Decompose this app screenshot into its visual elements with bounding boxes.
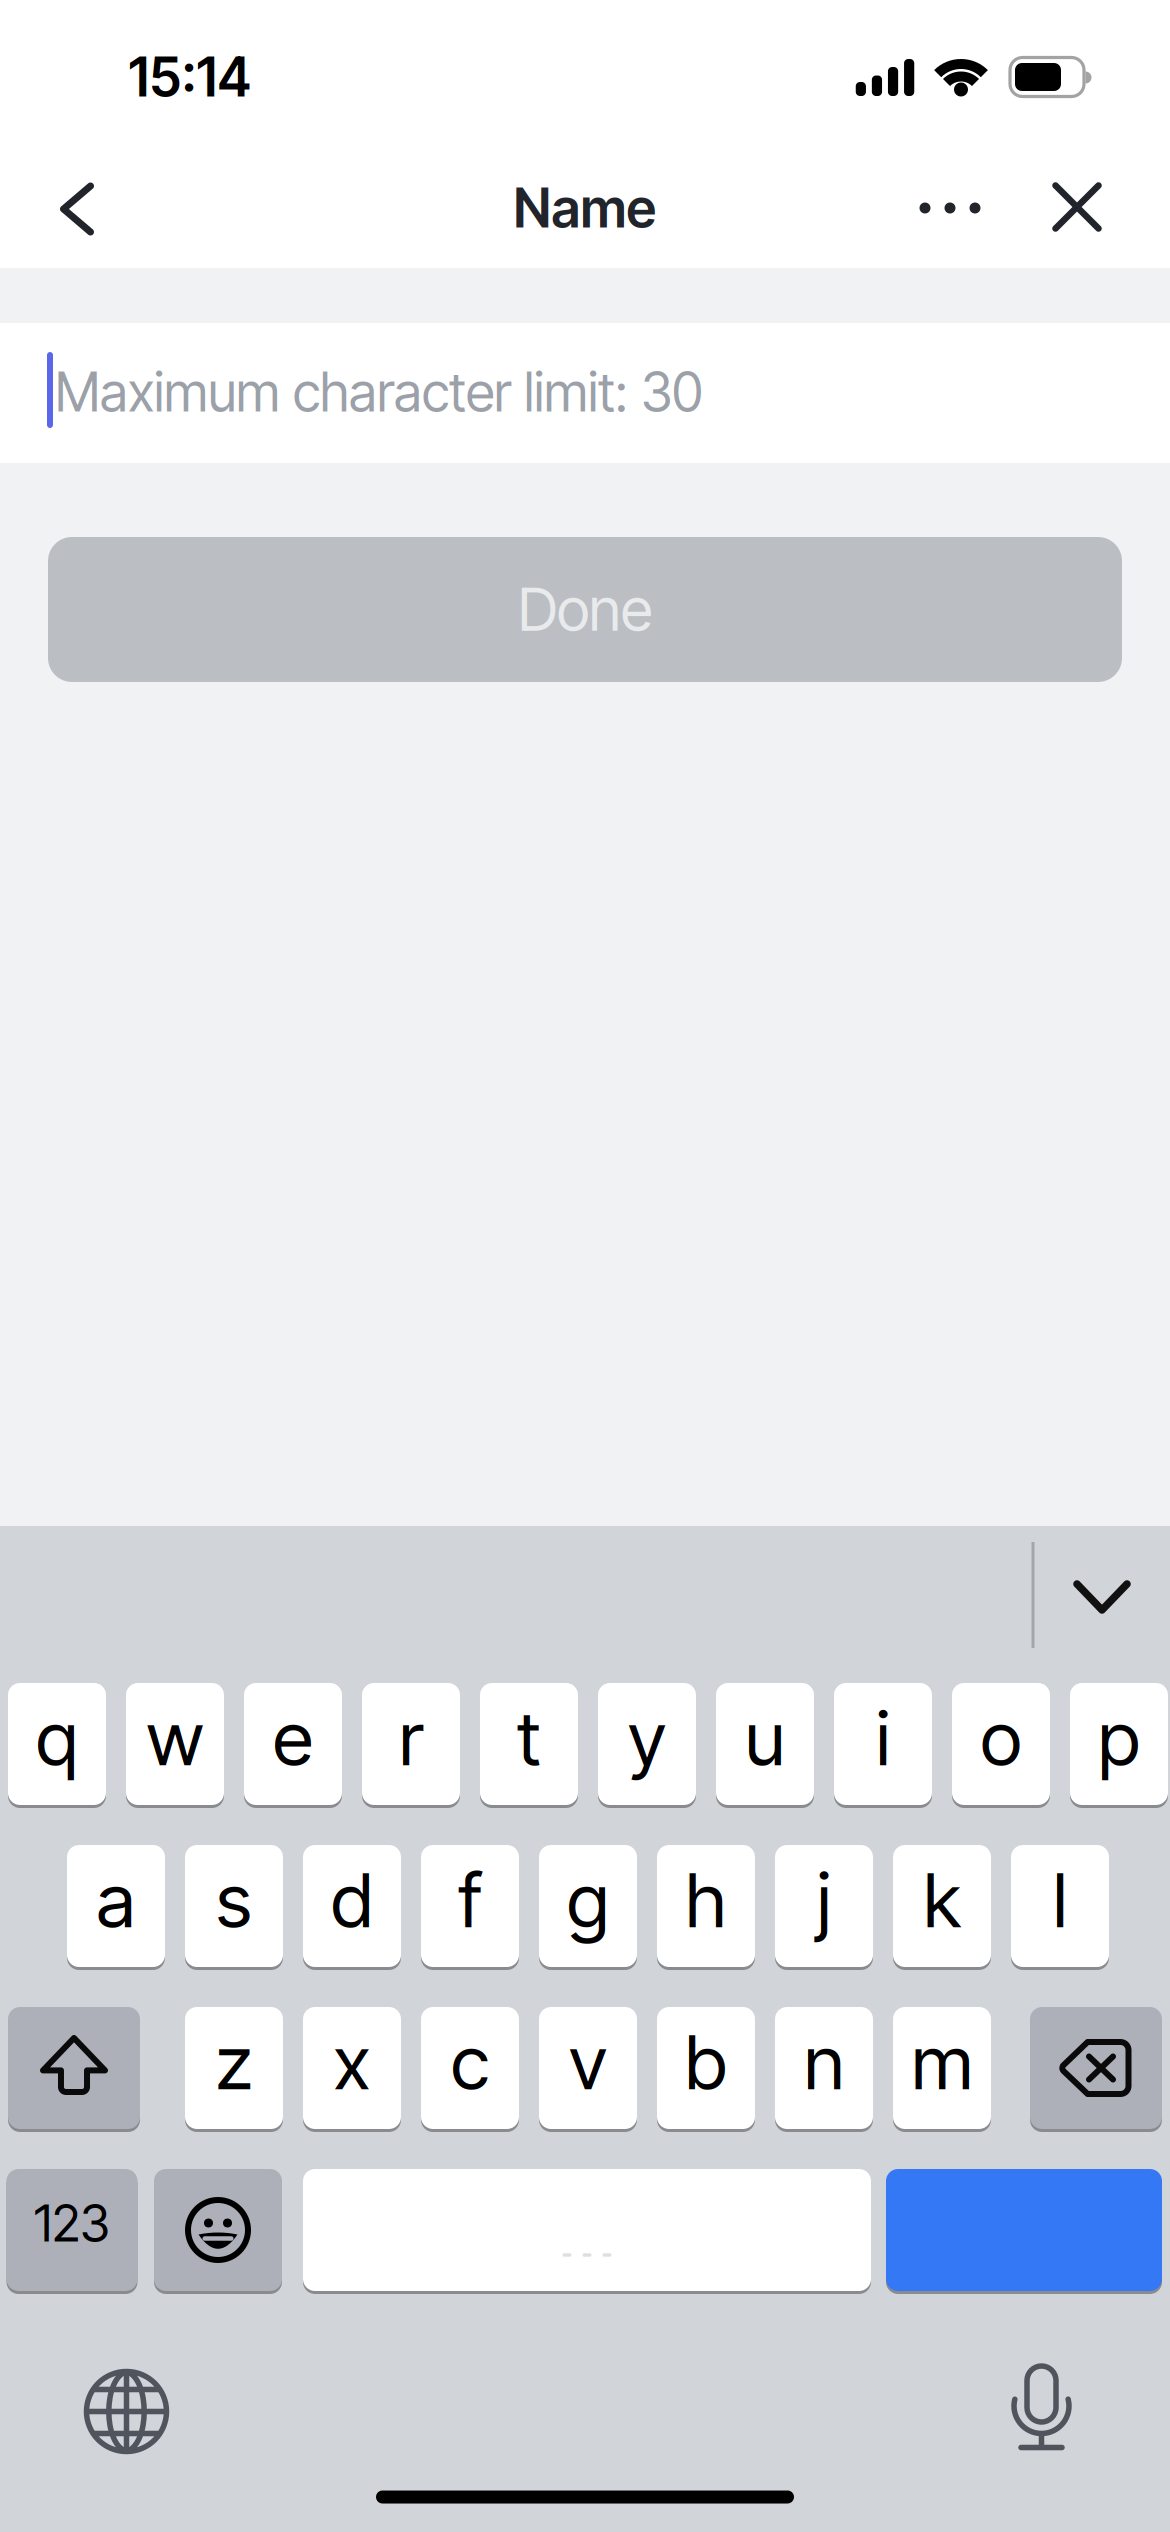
button[interactable]: n: [775, 2007, 873, 2129]
staticText: l: [1053, 1856, 1067, 1944]
staticText: r: [399, 1694, 423, 1782]
button[interactable]: o: [952, 1683, 1050, 1805]
staticText: j: [817, 1856, 831, 1944]
staticText: s: [216, 1856, 252, 1944]
button[interactable]: Next keyboard: [71, 2356, 181, 2466]
button[interactable]: w: [126, 1683, 224, 1805]
button[interactable]: f: [421, 1845, 519, 1967]
button[interactable]: Return: [886, 2169, 1162, 2291]
button[interactable]: d: [303, 1845, 401, 1967]
staticText: Done: [518, 575, 652, 644]
button[interactable]: j: [775, 1845, 873, 1967]
staticText: Name: [513, 176, 656, 239]
staticText: t: [517, 1694, 541, 1782]
staticText: f: [458, 1856, 481, 1944]
staticText: k: [923, 1856, 960, 1944]
button[interactable]: l: [1011, 1845, 1109, 1967]
button[interactable]: z: [185, 2007, 283, 2129]
button[interactable]: h: [657, 1845, 755, 1967]
staticText: u: [745, 1694, 785, 1782]
button[interactable]: Close: [1032, 162, 1122, 252]
button[interactable]: p: [1070, 1683, 1168, 1805]
staticText: d: [331, 1856, 373, 1944]
button[interactable]: u: [716, 1683, 814, 1805]
staticText: o: [980, 1694, 1021, 1782]
button[interactable]: k: [893, 1845, 991, 1967]
staticText: e: [273, 1694, 313, 1782]
staticText: c: [451, 2018, 489, 2106]
staticText: q: [36, 1694, 78, 1782]
staticText: p: [1098, 1694, 1140, 1782]
staticText: m: [911, 2018, 972, 2106]
button[interactable]: s: [185, 1845, 283, 1967]
button[interactable]: i: [834, 1683, 932, 1805]
staticText: v: [569, 2018, 607, 2106]
button[interactable]: q: [8, 1683, 106, 1805]
button[interactable]: Back: [32, 164, 122, 254]
staticText: 123: [34, 2193, 110, 2253]
button[interactable]: Dictation: [986, 2353, 1096, 2463]
staticText: b: [685, 2018, 727, 2106]
staticText: z: [215, 2018, 252, 2106]
staticText: g: [567, 1856, 609, 1944]
button[interactable]: Shift: [8, 2007, 140, 2129]
button[interactable]: Delete: [1030, 2007, 1162, 2129]
button[interactable]: t: [480, 1683, 578, 1805]
button[interactable]: Emoji: [154, 2169, 282, 2291]
button[interactable]: a: [67, 1845, 165, 1967]
button[interactable]: c: [421, 2007, 519, 2129]
button[interactable]: r: [362, 1683, 460, 1805]
button[interactable]: Dismiss keyboard: [1052, 1552, 1152, 1642]
staticText: Maximum character limit: 30: [55, 360, 703, 423]
staticText: n: [804, 2018, 844, 2106]
button[interactable]: More: [905, 163, 995, 253]
button[interactable]: v: [539, 2007, 637, 2129]
button[interactable]: Space: [303, 2169, 871, 2291]
staticText: y: [628, 1694, 666, 1782]
staticText: 15:14: [128, 45, 251, 108]
staticText: w: [146, 1694, 203, 1782]
staticText: h: [685, 1856, 726, 1944]
staticText: x: [333, 2018, 370, 2106]
button[interactable]: x: [303, 2007, 401, 2129]
button[interactable]: y: [598, 1683, 696, 1805]
button[interactable]: Numbers: [6, 2169, 137, 2291]
staticText: i: [876, 1694, 890, 1782]
button[interactable]: Done: [48, 537, 1122, 682]
button[interactable]: m: [893, 2007, 991, 2129]
button[interactable]: b: [657, 2007, 755, 2129]
staticText: a: [96, 1856, 135, 1944]
button[interactable]: e: [244, 1683, 342, 1805]
button[interactable]: g: [539, 1845, 637, 1967]
